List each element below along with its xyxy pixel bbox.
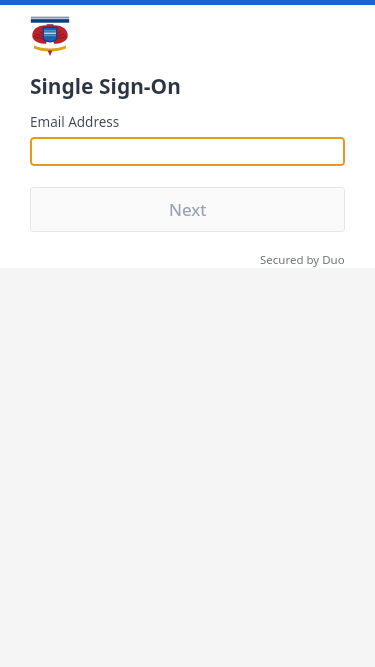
button[interactable]: Next xyxy=(30,187,345,232)
staticText: Secured by Duo xyxy=(260,252,345,268)
staticText: Email Address xyxy=(30,113,120,131)
button[interactable]: Email Address input xyxy=(30,137,345,166)
staticText: Single Sign-On xyxy=(30,72,181,101)
staticText: Next xyxy=(169,198,207,221)
other: Fuerza Aeroespacial Colombiana logo xyxy=(30,16,70,58)
